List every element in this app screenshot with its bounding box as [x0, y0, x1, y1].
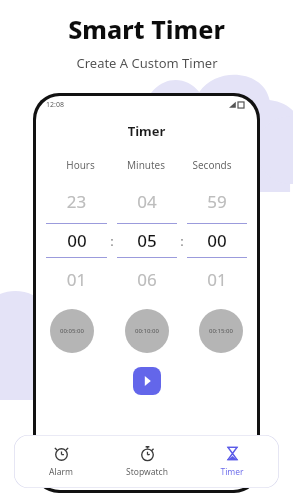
button[interactable]: 00:15:00 [199, 309, 243, 353]
staticText: Timer [220, 466, 244, 478]
staticText: Timer [36, 122, 257, 140]
staticText: 00:10:00 [135, 327, 159, 335]
staticText: Create A Custom Timer [76, 54, 218, 72]
button[interactable]: Stopwatch [108, 445, 186, 478]
staticText: 01 [46, 268, 107, 291]
staticText: 12:08 [46, 100, 64, 110]
button[interactable]: 00:10:00 [125, 309, 169, 353]
staticText: 59 [187, 190, 247, 213]
button[interactable]: 05 [117, 223, 177, 258]
button[interactable]: 00:05:00 [50, 309, 94, 353]
staticText: Smart Timer [68, 12, 225, 46]
staticText: 23 [46, 190, 107, 213]
staticText: 05 [137, 229, 157, 252]
staticText: Stopwatch [126, 466, 168, 478]
staticText: 00 [207, 229, 227, 252]
button[interactable]: Start timer [133, 367, 161, 395]
staticText: : [107, 232, 117, 250]
staticText: Seconds [179, 158, 245, 172]
staticText: Minutes [113, 158, 179, 172]
button[interactable]: 00 [187, 223, 247, 258]
staticText: Alarm [49, 466, 73, 478]
button[interactable]: Alarm [22, 445, 100, 478]
button[interactable]: 00 [46, 223, 107, 258]
staticText: 06 [117, 268, 177, 291]
staticText: 00:15:00 [209, 327, 233, 335]
staticText: : [177, 232, 187, 250]
button[interactable]: Timer [193, 445, 271, 478]
staticText: 04 [117, 190, 177, 213]
staticText: 00:05:00 [60, 327, 84, 335]
staticText: 01 [187, 268, 247, 291]
staticText: Hours [48, 158, 113, 172]
staticText: 00 [67, 229, 87, 252]
